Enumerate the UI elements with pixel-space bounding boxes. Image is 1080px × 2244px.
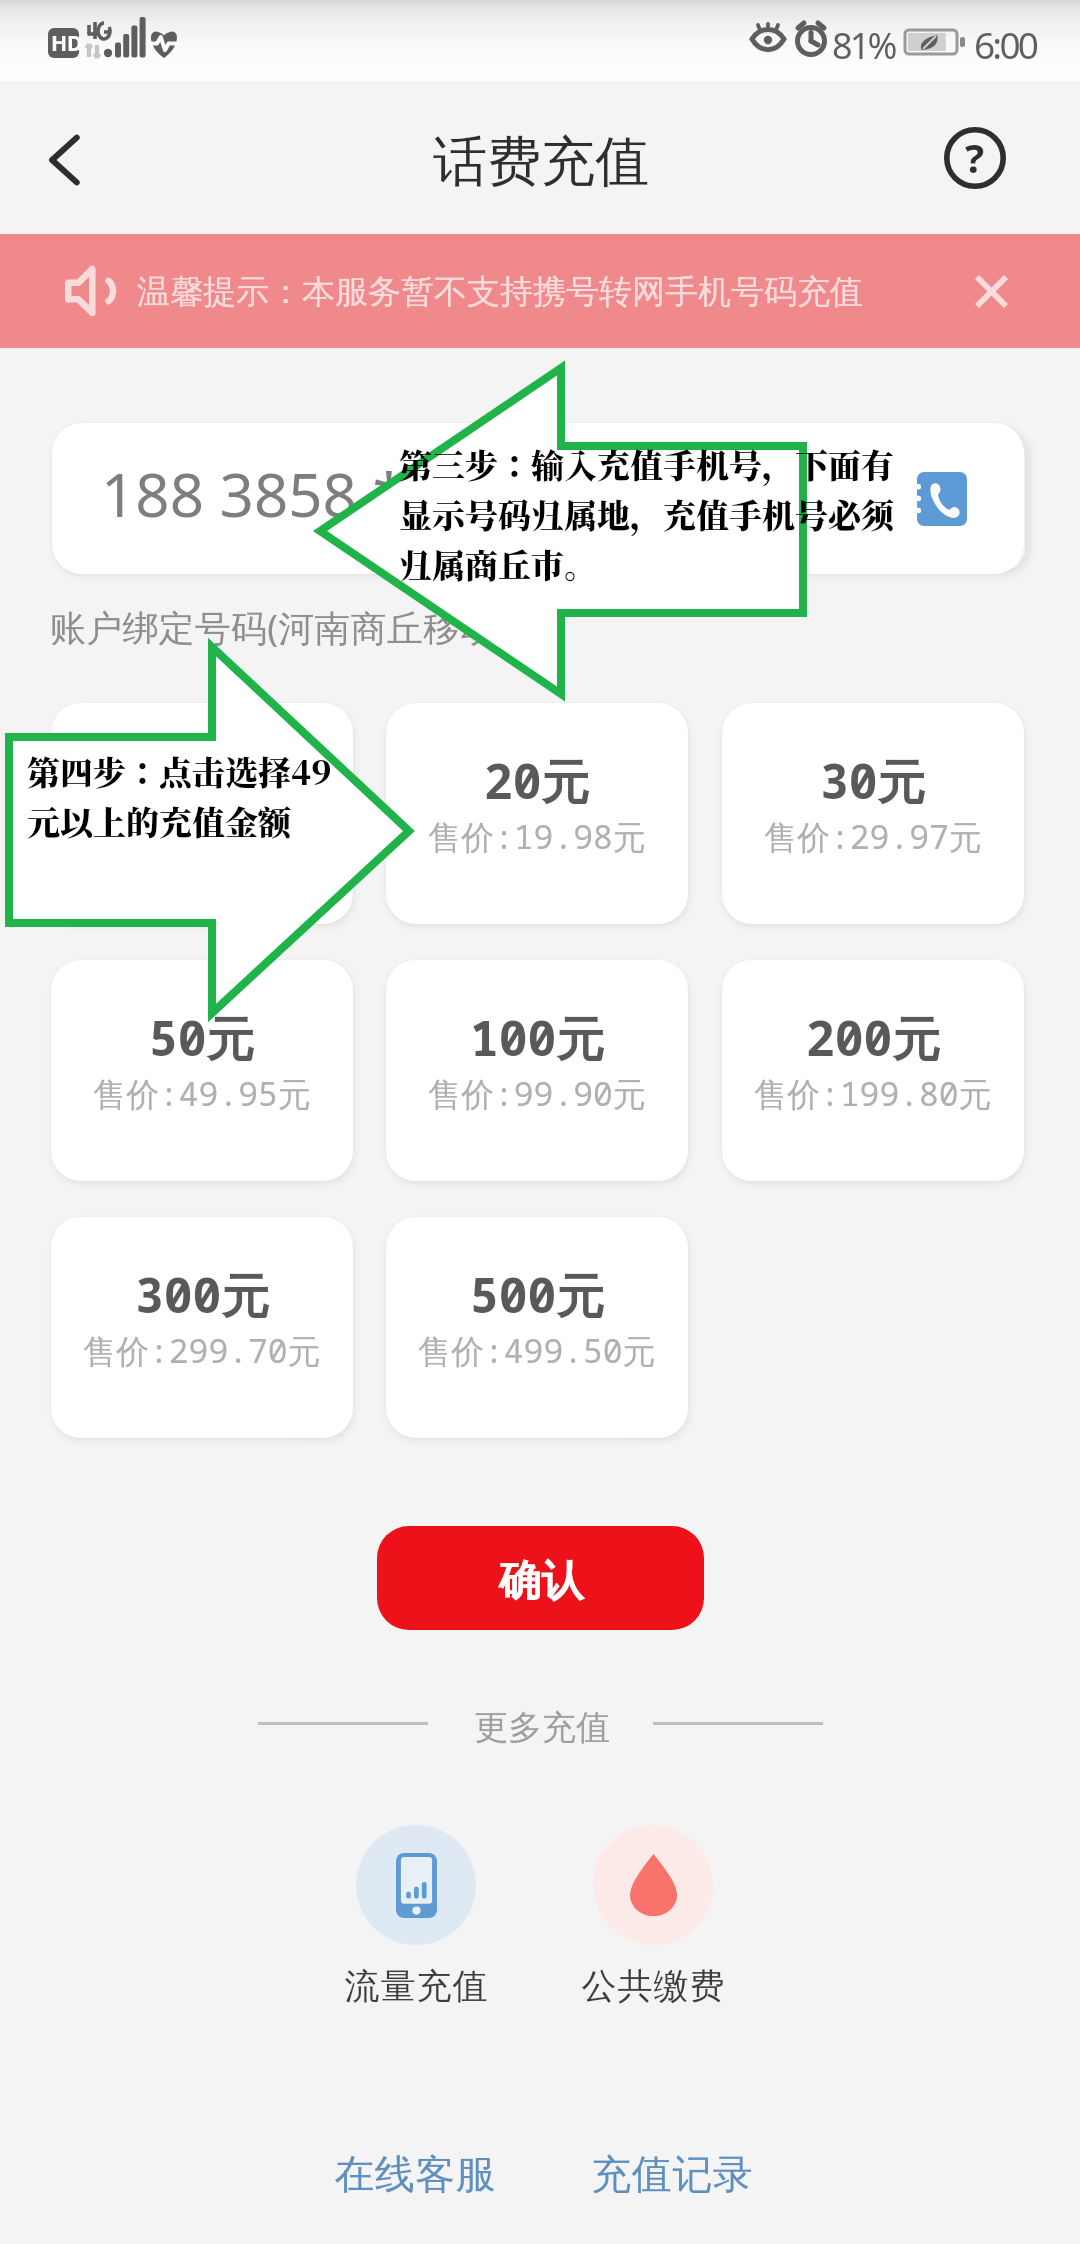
- staticText: 30元: [820, 748, 926, 814]
- button[interactable]: 300元: [51, 1217, 353, 1438]
- staticText: 售价:9.99元: [103, 814, 302, 859]
- staticText: 188 3858 ****: [101, 453, 505, 535]
- button[interactable]: 500元: [386, 1217, 688, 1438]
- button[interactable]: Contacts: [917, 472, 967, 526]
- staticText: 售价:19.98元: [428, 814, 646, 859]
- staticText: 20元: [484, 748, 590, 814]
- staticText: 200元: [806, 1005, 941, 1071]
- staticText: 在线客服: [334, 2149, 496, 2199]
- button[interactable]: 188 3858 ****: [52, 423, 1024, 574]
- button[interactable]: 充值记录: [581, 2137, 763, 2211]
- staticText: 温馨提示：本服务暂不支持携号转网手机号码充值: [137, 271, 863, 313]
- button[interactable]: 20元: [386, 703, 688, 924]
- button[interactable]: 温馨提示：本服务暂不支持携号转网手机号码充值: [0, 234, 1080, 348]
- button[interactable]: 在线客服: [324, 2137, 506, 2211]
- staticText: 售价:499.50元: [418, 1328, 656, 1373]
- button[interactable]: Back: [34, 124, 106, 196]
- staticText: 第四步：点击选择49元以上的充值金额: [27, 747, 347, 844]
- button[interactable]: Help: [931, 114, 1019, 202]
- button[interactable]: Close: [960, 260, 1022, 322]
- button[interactable]: 公共缴费: [581, 1825, 725, 2008]
- staticText: 售价:199.80元: [754, 1071, 992, 1116]
- staticText: ?: [965, 130, 985, 184]
- button[interactable]: 30元: [722, 703, 1024, 924]
- staticText: 售价:99.90元: [428, 1071, 646, 1116]
- button[interactable]: 100元: [386, 960, 688, 1181]
- staticText: 确认: [499, 1555, 583, 1608]
- button[interactable]: 200元: [722, 960, 1024, 1181]
- staticText: 81%: [832, 21, 895, 70]
- staticText: 100元: [470, 1005, 605, 1071]
- staticText: 10元: [150, 748, 256, 814]
- staticText: 第三步：输入充值手机号，下面有显示号码归属地，充值手机号必须归属商丘市。: [399, 440, 915, 587]
- staticText: 50元: [149, 1005, 255, 1071]
- staticText: 更多充值: [474, 1706, 610, 1749]
- staticText: 售价:299.70元: [83, 1328, 321, 1373]
- staticText: 6:00: [974, 19, 1037, 69]
- staticText: 流量充值: [344, 1964, 488, 2008]
- staticText: 账户绑定号码(河南商丘移动): [50, 603, 507, 652]
- staticText: 充值记录: [591, 2149, 753, 2199]
- button[interactable]: 50元: [51, 960, 353, 1181]
- staticText: 300元: [135, 1262, 270, 1328]
- staticText: 售价:29.97元: [764, 814, 982, 859]
- staticText: 话费充值: [433, 128, 649, 196]
- staticText: 售价:49.95元: [93, 1071, 311, 1116]
- button[interactable]: 流量充值: [344, 1825, 488, 2008]
- staticText: 公共缴费: [581, 1964, 725, 2008]
- staticText: HD: [51, 29, 83, 58]
- staticText: 500元: [470, 1262, 605, 1328]
- button[interactable]: 10元: [51, 703, 353, 924]
- button[interactable]: 确认: [377, 1526, 704, 1630]
